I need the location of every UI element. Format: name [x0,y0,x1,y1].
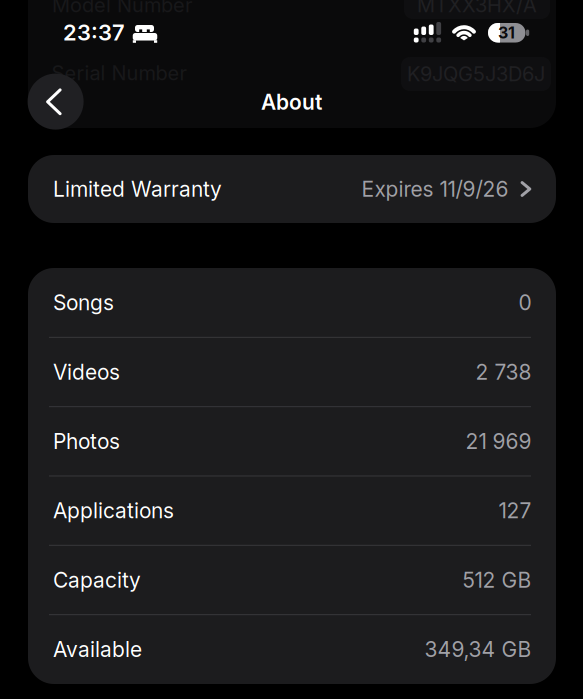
staticText: MTXX3HX/A [417,0,537,17]
staticText: Model Number [52,0,192,17]
staticText: 349,34 GB [424,637,531,662]
staticText: Applications [53,498,174,523]
button[interactable]: Applications [28,476,556,545]
staticText: Available [53,637,142,662]
button[interactable]: Limited Warranty [28,155,556,223]
staticText: 21 969 [465,429,531,454]
button[interactable]: Available [28,615,556,684]
staticText: 512 GB [462,567,531,593]
staticText: 31 [498,23,515,42]
staticText: 23:37 [63,19,125,46]
staticText: Photos [53,429,120,454]
staticText: About [261,89,322,115]
staticText: K9JQG5J3D6J [407,62,545,86]
staticText: Expires 11/9/26 [361,176,508,202]
staticText: 0 [518,290,531,315]
staticText: Songs [53,290,114,315]
staticText: Capacity [53,567,141,593]
staticText: Videos [53,359,120,385]
staticText: 127 [498,498,531,523]
staticText: Limited Warranty [53,176,222,202]
button[interactable]: Photos [28,407,556,476]
staticText: 2 738 [475,359,531,385]
button[interactable]: Capacity [28,545,556,615]
button[interactable]: Songs [28,268,556,337]
staticText: Serial Number [51,61,186,85]
button[interactable]: Videos [28,337,556,407]
button[interactable]: Back [28,74,84,130]
